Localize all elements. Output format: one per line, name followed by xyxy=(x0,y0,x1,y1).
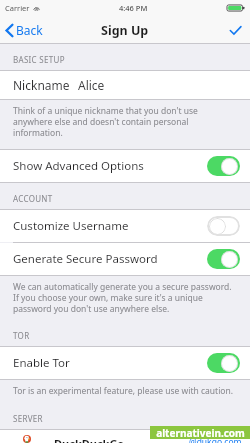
staticText: Tor is an experimental feature, please u… xyxy=(13,385,237,397)
staticText: DuckDuckGo xyxy=(54,436,125,443)
button[interactable]: Customize Username xyxy=(0,210,250,242)
button[interactable]: DuckDuckGo xyxy=(0,430,250,443)
staticText: Think of a unique nickname that you don'… xyxy=(13,105,237,138)
staticText: Sign Up xyxy=(101,22,149,39)
staticText: TOR xyxy=(13,330,30,341)
button[interactable]: On xyxy=(207,156,240,176)
staticText: Enable Tor xyxy=(13,355,207,371)
staticText: @dukgo.com xyxy=(189,436,242,443)
button[interactable]: Enable Tor xyxy=(0,347,250,379)
staticText: BASIC SETUP xyxy=(13,54,65,65)
button[interactable]: Generate Secure Password xyxy=(0,243,250,275)
staticText: Alice xyxy=(78,77,105,93)
staticText: alternativein.com xyxy=(156,426,245,439)
staticText: Carrier xyxy=(5,3,30,13)
staticText: Generate Secure Password xyxy=(13,251,207,267)
staticText: 4:46 PM xyxy=(119,3,148,13)
staticText: Show Advanced Options xyxy=(13,158,207,174)
staticText: SERVER xyxy=(13,413,43,424)
button[interactable]: Show Advanced Options xyxy=(0,150,250,182)
button[interactable]: On xyxy=(207,353,240,373)
button[interactable]: Done xyxy=(220,16,250,44)
staticText: Back xyxy=(16,22,43,38)
button[interactable]: Nickname xyxy=(0,71,250,99)
staticText: ACCOUNT xyxy=(13,193,53,204)
staticText: Customize Username xyxy=(13,218,207,234)
button[interactable]: On xyxy=(207,249,240,269)
button[interactable]: Back xyxy=(0,16,51,44)
staticText: We can automatically generate you a secu… xyxy=(13,281,237,314)
button[interactable]: Off xyxy=(207,216,240,236)
staticText: Nickname xyxy=(13,77,70,93)
